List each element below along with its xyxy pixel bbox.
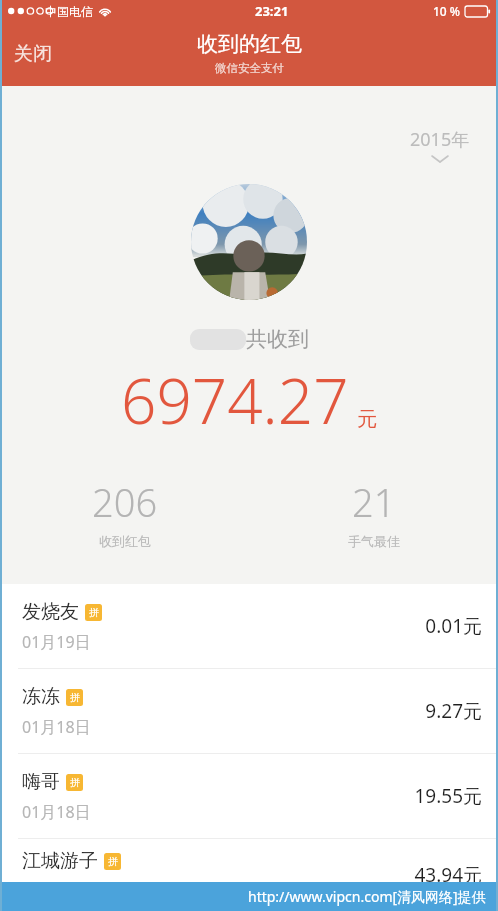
staticText: 拼 (70, 776, 80, 789)
staticText: 23:21 (255, 2, 289, 20)
staticText: 43.94元 (414, 862, 482, 888)
staticText: 微信安全支付 (215, 61, 284, 75)
staticText: http://www.vipcn.com[清风网络]提供 (248, 887, 486, 906)
staticText: 江城游子 (22, 849, 98, 873)
staticText: 01月18日 (22, 801, 91, 823)
staticText: 手气最佳 (348, 533, 400, 549)
staticText: 拼 (70, 691, 80, 704)
staticText: 中国电信 (45, 4, 93, 19)
staticText: 拼 (89, 606, 99, 619)
staticText: 元 (357, 407, 377, 432)
staticText: 收到的红包 (197, 31, 302, 57)
staticText: 发烧友 (22, 600, 79, 624)
button[interactable]: 嗨哥 (0, 753, 498, 838)
staticText: 206 (92, 476, 158, 528)
staticText: 拼 (108, 855, 118, 868)
button[interactable]: 冻冻 (0, 668, 498, 753)
staticText: 01月18日 (22, 716, 91, 738)
staticText: 9.27元 (425, 698, 482, 724)
staticText: 0.01元 (425, 613, 482, 639)
button[interactable]: 江城游子 (0, 838, 498, 911)
staticText: 01月17日 (22, 880, 91, 902)
staticText: 10 % (433, 3, 461, 19)
button[interactable]: 发烧友 (0, 584, 498, 668)
staticText: 嗨哥 (22, 770, 60, 794)
staticText: 6974.27 (121, 358, 349, 442)
button[interactable]: 2015年 (404, 121, 476, 170)
staticText: 收到红包 (99, 533, 151, 549)
staticText: 共收到 (246, 326, 309, 352)
staticText: 19.55元 (414, 783, 482, 809)
staticText: 2015年 (410, 127, 470, 152)
staticText: 21 (352, 476, 396, 528)
button[interactable]: 关闭 (0, 34, 66, 74)
staticText: 冻冻 (22, 685, 60, 709)
staticText: 关闭 (14, 42, 52, 66)
staticText: 01月19日 (22, 631, 91, 653)
